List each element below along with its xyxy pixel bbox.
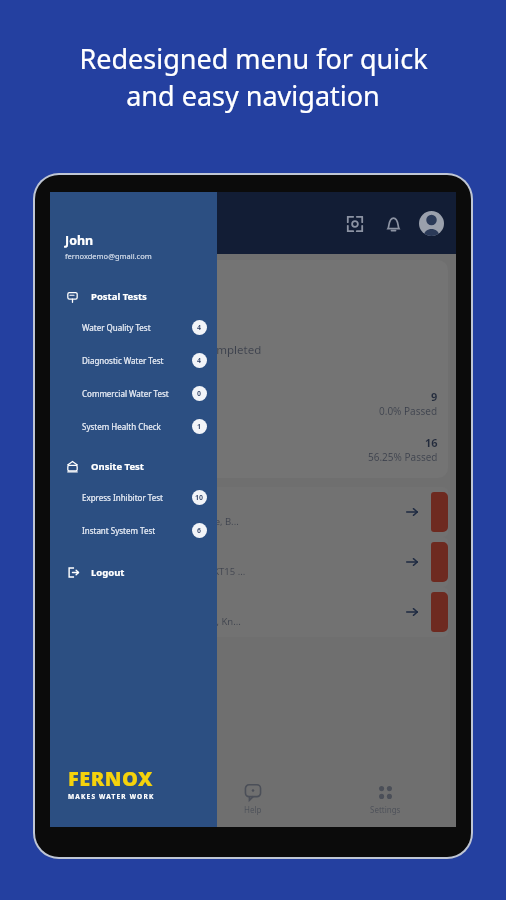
staticText: Redesigned menu for quick [79,40,428,77]
button[interactable]: Profile [419,211,444,236]
button[interactable]: Water Quality Test [50,311,217,344]
staticText: Help [244,804,262,815]
button[interactable]: Help [186,771,319,827]
button[interactable]: Diagnostic Water Test [50,344,217,377]
staticText: 0 [197,389,202,399]
staticText: Water Quality Test [82,322,192,333]
staticText: rd Road, Woking, Surrey, England, Kn... [68,615,241,628]
staticText: Commercial Water Test [82,388,192,399]
button[interactable]: Logout [50,557,217,587]
staticText: John [65,232,94,249]
button[interactable]: Notifications [381,212,405,236]
button[interactable]: Settings [319,771,452,827]
button[interactable]: 5 [58,537,448,587]
staticText: 20 [202,361,217,379]
staticText: 56.25% Passed [368,450,438,464]
staticText: 4 [197,323,202,333]
staticText: FERNOX [68,765,153,792]
staticText: Express Inhibitor Test [82,492,192,503]
staticText: 16 [425,435,438,450]
staticText: 1 [197,422,202,432]
button[interactable]: Commercial Water Test [50,377,217,410]
staticText: Tests [72,280,106,298]
button[interactable]: System Health Check [50,410,217,443]
staticText: n Business Centre, Elizabeth Close, B... [68,515,239,528]
staticText: and easy navigation [126,77,380,114]
button[interactable]: Onsite Test [50,451,217,481]
staticText: Logout [91,566,125,579]
staticText: 4 [197,356,202,366]
staticText: 0.0% Passed [379,404,438,418]
staticText: 9 [431,389,438,404]
staticText: Completed [202,342,262,358]
staticText: Settings [370,804,401,815]
staticText: Postal Tests [91,290,147,303]
button[interactable]: Postal Tests [50,281,217,311]
staticText: Diagnostic Water Test [82,355,192,366]
button[interactable]: ns [58,487,448,537]
button[interactable]: Scan test [54,771,186,827]
staticText: 6 [197,526,202,536]
staticText: MAKES WATER WORK [68,792,155,801]
button[interactable]: Scan code [343,212,367,236]
staticText: Onsite Test [91,460,144,473]
staticText: Instant System Test [82,525,192,536]
button[interactable]: 7 [58,587,448,637]
button[interactable]: Express Inhibitor Test [50,481,217,514]
staticText: fernoxdemo@gmail.com [65,251,152,261]
staticText: System Health Check [82,421,192,432]
button[interactable]: Instant System Test [50,514,217,547]
button[interactable]: Tests [58,260,448,478]
staticText: 10 [195,493,204,503]
staticText: Way, New Haw, Surrey, England, KT15 ... [68,565,246,578]
